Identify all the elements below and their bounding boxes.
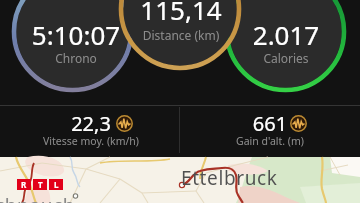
staticText: Calories	[206, 50, 360, 66]
staticText: L	[54, 179, 59, 190]
staticText: 2.017	[206, 17, 360, 51]
staticText: Gain d'alt. (m)	[181, 134, 359, 148]
staticText: 661	[181, 110, 359, 137]
staticText: Chrono	[0, 50, 156, 66]
staticText: T	[38, 179, 43, 190]
staticText: Distance (km)	[101, 27, 261, 43]
staticText: Vitesse moy. (km/h)	[2, 134, 180, 148]
staticText: Ettelbruck	[181, 165, 278, 191]
button[interactable]: 661	[181, 108, 359, 155]
staticText: 115,14	[101, 0, 261, 26]
staticText: R	[21, 179, 27, 190]
button[interactable]: 22,3	[2, 108, 180, 155]
staticText: 22,3	[2, 110, 180, 137]
staticText: Schnauch	[0, 193, 76, 203]
button[interactable]: RTL	[17, 179, 63, 190]
staticText: 5:10:07	[0, 17, 156, 51]
